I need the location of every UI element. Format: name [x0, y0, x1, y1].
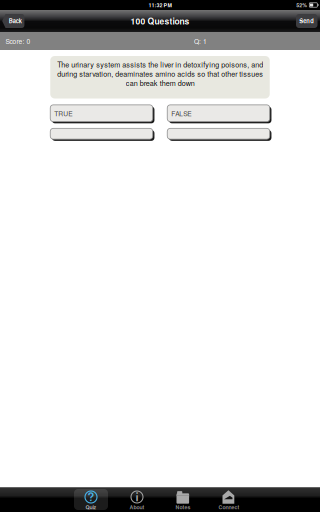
- staticText: ?: [87, 489, 94, 505]
- button[interactable]: Notes: [160, 487, 206, 512]
- button[interactable]: TRUE: [50, 104, 153, 122]
- staticText: Score: 0: [5, 36, 30, 46]
- button[interactable]: i: [114, 487, 160, 512]
- button[interactable]: Connect: [206, 487, 252, 512]
- staticText: 11:32 PM: [148, 1, 171, 9]
- staticText: 100 Questions: [130, 15, 189, 27]
- staticText: Back: [9, 17, 22, 25]
- staticText: Send: [299, 17, 314, 25]
- button[interactable]: FALSE: [167, 104, 270, 122]
- staticText: i: [135, 489, 138, 505]
- staticText: Quiz: [85, 503, 96, 511]
- button[interactable]: [167, 127, 270, 140]
- staticText: About: [129, 503, 144, 511]
- staticText: TRUE: [54, 108, 72, 118]
- button[interactable]: Back: [0, 14, 24, 28]
- button[interactable]: Send: [296, 14, 320, 28]
- staticText: Q: 1: [194, 36, 207, 46]
- staticText: 52%: [296, 1, 307, 9]
- button[interactable]: [50, 127, 153, 140]
- button[interactable]: ?: [68, 487, 114, 512]
- staticText: FALSE: [171, 108, 191, 118]
- staticText: The urinary system assists the liver in …: [57, 59, 263, 88]
- staticText: Connect: [218, 503, 239, 511]
- staticText: Notes: [175, 503, 190, 511]
